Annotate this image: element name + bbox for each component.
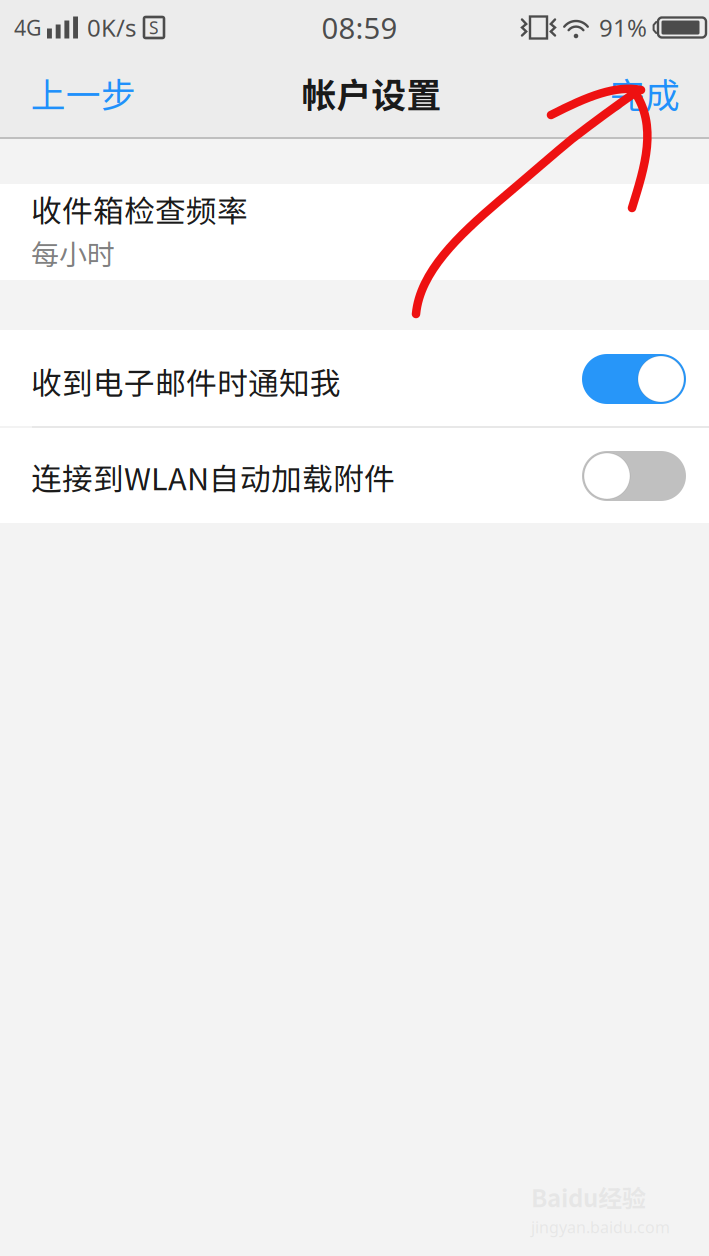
staticText: 每小时	[31, 232, 115, 273]
staticText: 收件箱检查频率	[31, 187, 248, 231]
staticText: 收到电子邮件时通知我	[31, 359, 341, 404]
button[interactable]: 收到电子邮件时通知我	[0, 330, 709, 426]
staticText: Baidu经验	[531, 1179, 646, 1214]
staticText: 0K/s	[87, 11, 136, 44]
staticText: 91%	[599, 11, 647, 44]
button[interactable]: 收件箱检查频率	[0, 184, 709, 280]
staticText: 4G	[14, 13, 42, 42]
staticText: 连接到WLAN自动加载附件	[31, 455, 395, 499]
staticText: 完成	[610, 68, 680, 118]
staticText: 帐户设置	[301, 68, 441, 118]
button[interactable]: 连接到WLAN自动加载附件	[0, 428, 709, 523]
staticText: S	[149, 16, 159, 39]
button[interactable]: 完成	[581, 55, 709, 139]
staticText: jingyan.baidu.com	[531, 1216, 670, 1238]
button[interactable]: 上一步	[0, 55, 167, 139]
staticText: 上一步	[31, 68, 136, 118]
staticText: 08:59	[321, 7, 397, 47]
